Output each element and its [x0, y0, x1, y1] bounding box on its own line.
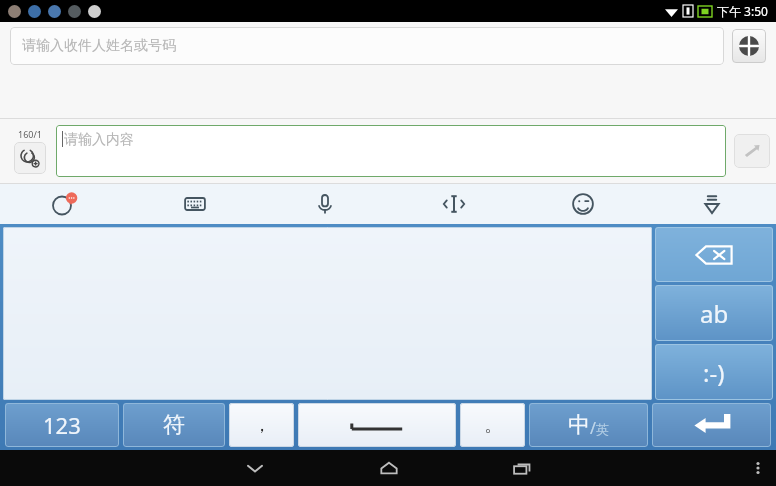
button[interactable]: Emoticon — [655, 344, 773, 400]
button[interactable]: Cursor move — [389, 184, 518, 224]
button[interactable]: Space — [298, 403, 456, 447]
button[interactable]: 符 — [123, 403, 225, 447]
button[interactable]: Backspace — [655, 227, 773, 282]
staticText: ab — [700, 297, 729, 330]
button[interactable]: 请输入内容 — [56, 125, 726, 177]
button[interactable]: 123 — [5, 403, 119, 447]
button[interactable]: Send — [734, 134, 770, 168]
button[interactable]: Hide keyboard — [228, 450, 282, 486]
staticText: 请输入收件人姓名或号码 — [22, 37, 176, 55]
button[interactable]: Add contact — [732, 29, 766, 63]
button[interactable]: 。 — [460, 403, 525, 447]
staticText: 160/1 — [18, 128, 42, 140]
button[interactable]: Home — [362, 450, 416, 486]
staticText: 。 — [484, 414, 502, 437]
staticText: 英 — [596, 421, 609, 437]
staticText: 请输入内容 — [64, 131, 134, 149]
button[interactable]: 请输入收件人姓名或号码 — [10, 27, 724, 65]
button[interactable]: Emoji — [518, 184, 647, 224]
button[interactable]: Handwriting area — [3, 227, 652, 400]
button[interactable]: Hide keyboard — [647, 184, 776, 224]
staticText: 123 — [43, 410, 81, 440]
button[interactable]: Attach — [6, 128, 54, 174]
staticText: ， — [253, 414, 271, 437]
staticText: 符 — [163, 411, 185, 439]
button[interactable]: Enter — [652, 403, 771, 447]
button[interactable]: Voice input — [260, 184, 389, 224]
button[interactable]: Recents — [495, 450, 549, 486]
staticText: 下午 3:50 — [717, 3, 768, 19]
button[interactable]: 中/英 switch — [529, 403, 648, 447]
staticText: / — [590, 417, 596, 439]
staticText: 中 — [568, 411, 590, 439]
staticText: :-) — [703, 356, 725, 389]
button[interactable]: ab — [655, 285, 773, 341]
button[interactable]: ， — [229, 403, 294, 447]
button[interactable]: More options — [740, 450, 776, 486]
button[interactable]: iFly logo — [0, 184, 130, 224]
button[interactable]: Keyboard layout — [130, 184, 260, 224]
